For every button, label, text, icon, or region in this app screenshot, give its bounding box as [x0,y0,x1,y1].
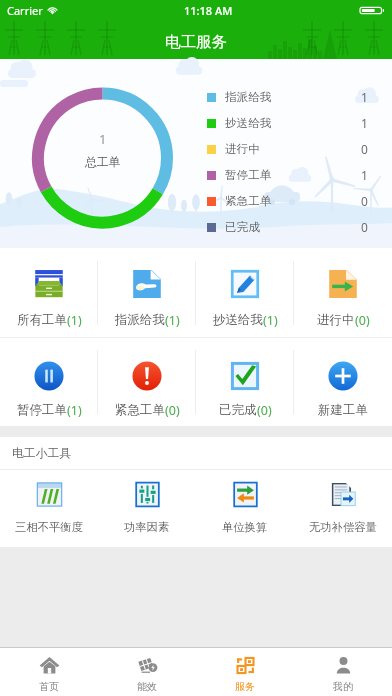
staticText: 无功补偿容量 [309,520,377,534]
button[interactable]: 新建工单 [294,338,392,426]
button[interactable]: 我的 [294,648,392,696]
staticText: 已完成 [219,402,257,418]
staticText: 抄送给我 [213,312,263,328]
staticText: 1 [361,115,368,131]
staticText: (0) [257,402,272,419]
staticText: 1 [361,167,368,183]
button[interactable]: 暂停工单 [0,338,98,426]
staticText: (0) [355,312,370,329]
staticText: 11:18 AM [184,3,233,18]
staticText: 1 [361,89,368,105]
staticText: 0 [361,193,368,209]
staticText: 指派给我 [115,312,165,328]
staticText: 暂停工单 [225,168,272,183]
button[interactable]: 无功补偿容量 [294,470,392,547]
staticText: 已完成 [225,220,260,235]
button[interactable]: 进行中 [294,248,392,337]
staticText: (1) [263,312,278,329]
staticText: 我的 [333,680,353,693]
button[interactable]: 功率因素 [98,470,196,547]
staticText: 能效 [137,680,157,693]
button[interactable]: 三相不平衡度 [0,470,98,547]
staticText: 指派给我 [225,90,272,105]
staticText: 总工单 [85,155,121,170]
staticText: 1 [99,130,107,148]
staticText: 抄送给我 [225,116,272,131]
staticText: 单位换算 [222,520,268,534]
staticText: 新建工单 [318,402,368,418]
staticText: (1) [67,402,82,419]
staticText: 进行中 [317,312,355,328]
staticText: (0) [165,402,180,419]
staticText: 0 [361,219,368,235]
button[interactable]: 抄送给我 [196,248,294,337]
staticText: (1) [165,312,180,329]
button[interactable]: 紧急工单 [98,338,196,426]
staticText: 功率因素 [124,520,170,534]
staticText: 所有工单 [17,312,67,328]
staticText: 暂停工单 [17,402,67,418]
staticText: 紧急工单 [115,402,165,418]
staticText: 紧急工单 [225,194,272,209]
button[interactable]: 能效 [98,648,196,696]
button[interactable]: 服务 [196,648,294,696]
button[interactable]: 首页 [0,648,98,696]
staticText: 进行中 [225,142,260,157]
staticText: 首页 [39,680,59,693]
button[interactable]: 已完成 [196,338,294,426]
staticText: 电工服务 [165,32,227,52]
staticText: 服务 [235,680,255,693]
button[interactable]: 所有工单 [0,248,98,337]
staticText: 电工小工具 [12,446,71,461]
staticText: (1) [67,312,82,329]
staticText: 三相不平衡度 [15,520,83,534]
button[interactable]: 指派给我 [98,248,196,337]
staticText: 0 [361,141,368,157]
button[interactable]: 单位换算 [196,470,294,547]
staticText: Carrier [7,3,43,18]
